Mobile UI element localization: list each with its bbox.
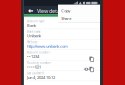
button[interactable]: Show routing number (84, 67, 89, 71)
staticText: Account type (27, 19, 45, 23)
staticText: Account number (27, 51, 50, 54)
staticText: Website (27, 40, 38, 44)
button[interactable]: Copy (61, 8, 87, 13)
staticText: Unibank (27, 33, 41, 38)
staticText: ••••021 (27, 64, 41, 70)
staticText: Copy (61, 8, 70, 13)
staticText: ••1234 (27, 54, 39, 59)
button[interactable]: Copy routing number (89, 67, 94, 72)
staticText: http://www.unibank.com (27, 43, 68, 49)
button[interactable]: Share (61, 16, 87, 21)
staticText: View details (37, 7, 65, 14)
staticText: Share (61, 16, 71, 21)
button[interactable]: Copy account number (89, 57, 94, 62)
staticText: Jun 4, 2024 10:12 (27, 75, 55, 80)
staticText: Bank name (27, 30, 41, 33)
staticText: Last updated (27, 71, 44, 75)
button[interactable]: Back (28, 9, 33, 13)
staticText: Routing number (27, 61, 51, 65)
staticText: Bank (27, 23, 36, 28)
